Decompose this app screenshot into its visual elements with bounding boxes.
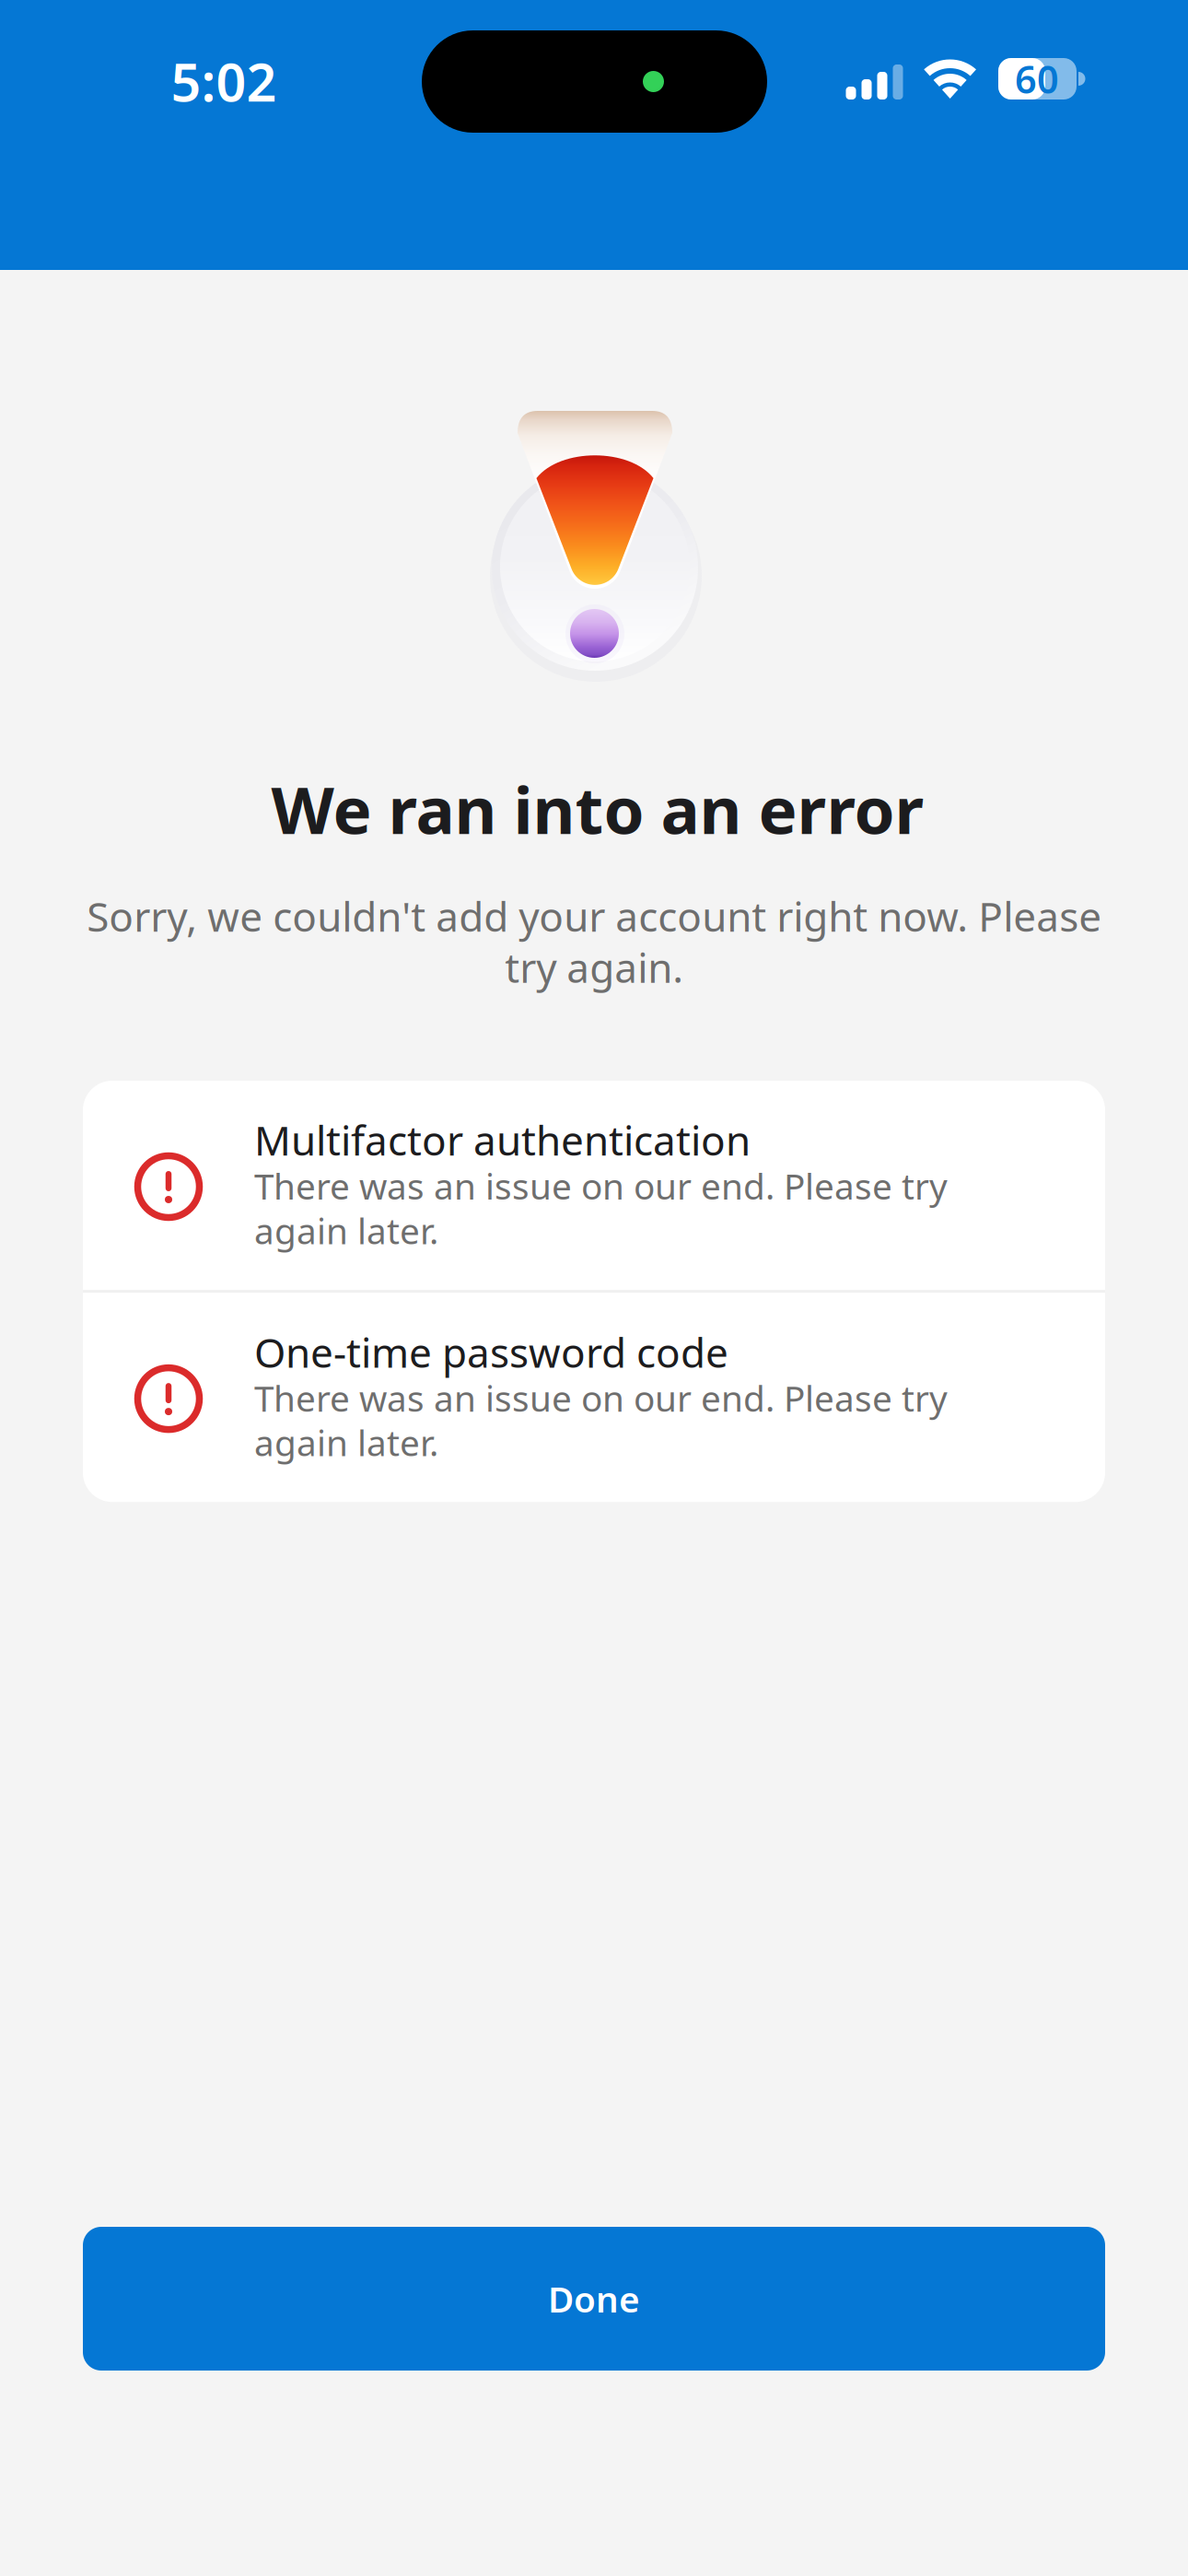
- staticText: We ran into an error: [271, 766, 924, 852]
- staticText: Multifactor authentication: [254, 1113, 751, 1167]
- button[interactable]: Done: [83, 2227, 1105, 2371]
- button[interactable]: One-time password code: [83, 1293, 1105, 1502]
- staticText: One-time password code: [254, 1325, 728, 1379]
- staticText: 60: [1015, 54, 1059, 104]
- staticText: There was an issue on our end. Please tr…: [254, 1374, 948, 1466]
- button[interactable]: Multifactor authentication: [83, 1081, 1105, 1290]
- staticText: There was an issue on our end. Please tr…: [254, 1162, 948, 1254]
- staticText: Sorry, we couldn't add your account righ…: [87, 889, 1101, 994]
- staticText: 5:02: [171, 46, 277, 116]
- staticText: Done: [548, 2275, 640, 2322]
